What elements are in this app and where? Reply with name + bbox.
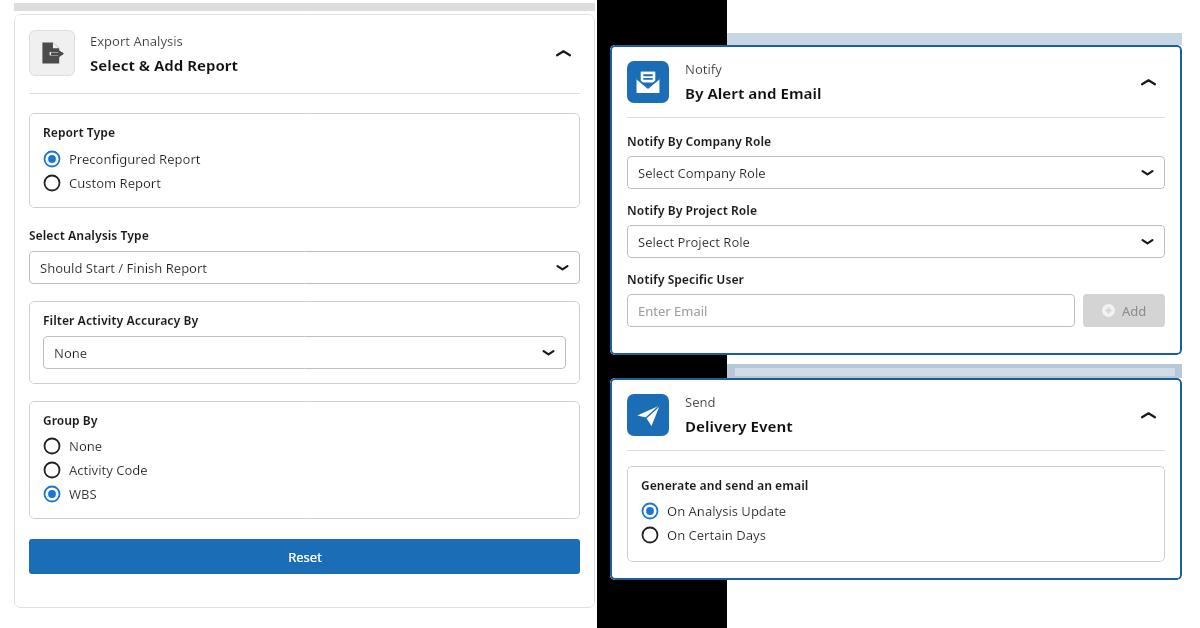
staticText: WBS bbox=[69, 485, 97, 503]
button[interactable]: Add bbox=[1083, 294, 1165, 327]
staticText: Reset bbox=[288, 548, 322, 566]
staticText: Delivery Event bbox=[685, 416, 793, 436]
staticText: Notify By Company Role bbox=[627, 133, 772, 149]
staticText: Report Type bbox=[43, 124, 116, 140]
staticText: Custom Report bbox=[69, 174, 161, 192]
button[interactable]: WBS bbox=[43, 482, 97, 506]
button[interactable]: Collapse bbox=[1131, 398, 1165, 432]
staticText: Generate and send an email bbox=[641, 477, 809, 493]
staticText: Group By bbox=[43, 412, 98, 428]
staticText: None bbox=[54, 344, 542, 362]
staticText: Select Company Role bbox=[638, 164, 1141, 182]
button[interactable]: On Analysis Update bbox=[641, 499, 787, 523]
button[interactable]: Collapse bbox=[546, 36, 580, 70]
staticText: By Alert and Email bbox=[685, 83, 822, 103]
staticText: On Analysis Update bbox=[667, 502, 787, 520]
button[interactable]: Select Project Role bbox=[627, 225, 1165, 258]
staticText: Activity Code bbox=[69, 461, 148, 479]
button[interactable]: None bbox=[43, 434, 103, 458]
button[interactable]: Custom Report bbox=[43, 171, 161, 195]
staticText: Filter Activity Accuracy By bbox=[43, 312, 199, 328]
button[interactable]: Activity Code bbox=[43, 458, 148, 482]
staticText: Select Project Role bbox=[638, 233, 1141, 251]
staticText: Notify bbox=[685, 60, 722, 78]
staticText: Notify By Project Role bbox=[627, 202, 758, 218]
staticText: Select Analysis Type bbox=[29, 227, 149, 243]
button[interactable]: Enter Email bbox=[627, 294, 1075, 327]
staticText: Preconfigured Report bbox=[69, 150, 201, 168]
staticText: None bbox=[69, 437, 103, 455]
button[interactable]: Reset bbox=[29, 539, 580, 574]
button[interactable]: Preconfigured Report bbox=[43, 147, 201, 171]
button[interactable]: None bbox=[43, 336, 566, 369]
button[interactable]: Select Company Role bbox=[627, 156, 1165, 189]
staticText: Add bbox=[1122, 302, 1147, 320]
staticText: Select & Add Report bbox=[90, 55, 239, 75]
staticText: Enter Email bbox=[638, 302, 708, 320]
staticText: Should Start / Finish Report bbox=[40, 259, 556, 277]
staticText: Notify Specific User bbox=[627, 271, 744, 287]
staticText: Send bbox=[685, 393, 716, 411]
staticText: Export Analysis bbox=[90, 32, 183, 50]
button[interactable]: On Certain Days bbox=[641, 523, 766, 547]
staticText: On Certain Days bbox=[667, 526, 766, 544]
button[interactable]: Should Start / Finish Report bbox=[29, 251, 580, 284]
button[interactable]: Collapse bbox=[1131, 65, 1165, 99]
